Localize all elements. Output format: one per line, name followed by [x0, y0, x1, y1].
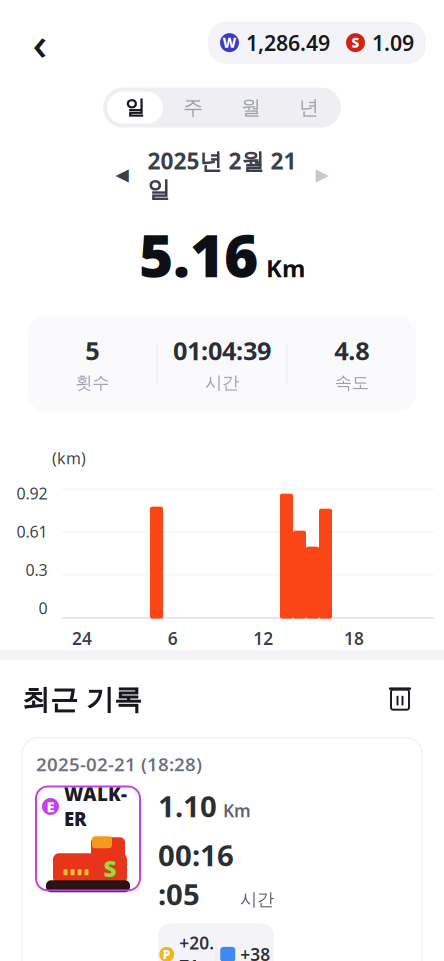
button[interactable]: 일 — [106, 90, 164, 126]
staticText: 24 — [72, 627, 92, 650]
staticText: 1.10 — [158, 786, 217, 825]
staticText: P — [163, 946, 171, 961]
button[interactable]: 주 — [164, 90, 222, 126]
staticText: ‹ — [32, 12, 47, 73]
staticText: 2025-02-21 (18:28) — [36, 752, 202, 776]
staticText: 2025년 2월 21일 — [147, 146, 296, 203]
staticText: 1,286.49 — [246, 28, 330, 57]
staticText: 0 — [38, 597, 47, 619]
staticText: 시간 — [240, 889, 274, 910]
staticText: 속도 — [335, 372, 369, 393]
staticText: 일 — [125, 95, 145, 120]
staticText: 1.09 — [372, 28, 414, 57]
staticText: 00:16:05 — [158, 835, 234, 913]
staticText: 12 — [253, 627, 273, 650]
staticText: S — [103, 853, 116, 883]
staticText: Km — [266, 252, 305, 284]
button[interactable]: Delete records — [378, 678, 422, 722]
staticText: +20.71 — [179, 931, 214, 961]
staticText: 년 — [299, 95, 319, 120]
staticText: 0.92 — [16, 483, 47, 504]
staticText: E — [46, 797, 54, 816]
staticText: 01:04:39 — [173, 333, 271, 367]
button[interactable]: Token balances — [208, 21, 426, 64]
staticText: (km) — [52, 447, 86, 469]
staticText: 5.16 — [139, 216, 258, 293]
staticText: 4.8 — [334, 333, 369, 367]
staticText: 0.3 — [25, 559, 47, 580]
button[interactable]: Next day — [302, 158, 342, 192]
staticText: W — [222, 34, 236, 51]
staticText: +38 — [240, 943, 270, 961]
staticText: 월 — [241, 95, 261, 120]
staticText: 18 — [344, 627, 364, 650]
staticText: 최근 기록 — [22, 682, 142, 717]
staticText: 주 — [183, 95, 203, 120]
staticText: ◀ — [115, 165, 128, 184]
staticText: 5 — [85, 333, 99, 367]
staticText: 0.61 — [16, 521, 47, 542]
staticText: 시간 — [205, 372, 239, 393]
button[interactable]: Previous day — [102, 158, 142, 192]
staticText: WALKER — [64, 782, 127, 831]
button[interactable]: 2025-02-21 (18:28) — [22, 738, 422, 961]
button[interactable]: Back — [18, 21, 62, 65]
staticText: 횟수 — [75, 372, 109, 393]
button[interactable]: 년 — [280, 90, 338, 126]
staticText: Km — [223, 799, 251, 822]
staticText: S — [351, 34, 359, 51]
staticText: ▶ — [315, 165, 328, 184]
staticText: 6 — [168, 627, 178, 650]
button[interactable]: 월 — [222, 90, 280, 126]
